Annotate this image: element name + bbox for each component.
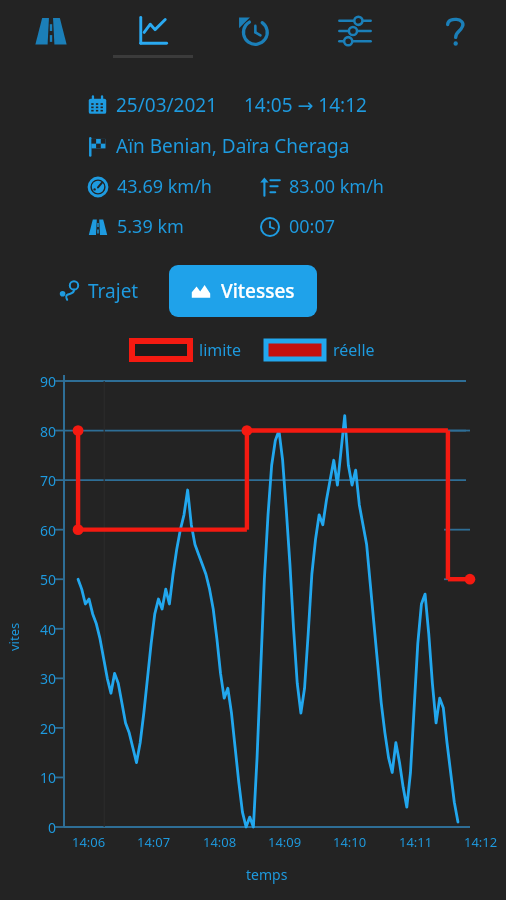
staticText: temps: [246, 865, 288, 884]
staticText: 90: [40, 372, 57, 391]
staticText: 83.00 km/h: [289, 174, 384, 199]
other: Réglages: [338, 14, 372, 48]
staticText: 14:08: [203, 833, 237, 851]
staticText: Trajet: [88, 278, 139, 304]
staticText: 5.39 km: [117, 214, 184, 239]
staticText: 80: [40, 422, 57, 441]
staticText: 14:10: [333, 833, 367, 851]
staticText: limite: [199, 339, 242, 361]
staticText: vitesse (km/h): [5, 623, 23, 651]
staticText: 14:07: [137, 833, 171, 851]
staticText: 20: [40, 719, 57, 738]
other: Vitesses: [191, 281, 211, 301]
button[interactable]: Graphiques: [102, 0, 203, 62]
staticText: 43.69 km/h: [117, 174, 212, 199]
button[interactable]: Réglages: [304, 0, 405, 62]
other: Lieu: [88, 137, 107, 156]
other: Durée: [260, 217, 280, 237]
staticText: 60: [40, 521, 57, 540]
other: Vitesse moyenne: [88, 177, 108, 197]
staticText: 14:06: [72, 833, 106, 851]
other: Distance: [88, 217, 108, 237]
staticText: 14:11: [399, 833, 433, 851]
other: Route: [34, 14, 68, 48]
staticText: réelle: [333, 339, 375, 361]
staticText: 30: [40, 669, 57, 688]
other: Graphiques: [136, 14, 170, 48]
button[interactable]: Trajet: [52, 268, 147, 314]
staticText: 40: [40, 620, 57, 639]
button[interactable]: Historique: [203, 0, 304, 62]
staticText: Aïn Benian, Daïra Cheraga: [116, 133, 350, 159]
staticText: 14:12: [464, 833, 498, 851]
staticText: 00:07: [289, 214, 336, 239]
staticText: Vitesses: [221, 278, 295, 304]
other: Historique: [237, 14, 271, 48]
staticText: 70: [40, 471, 57, 490]
staticText: 50: [40, 570, 57, 589]
button[interactable]: Route: [0, 0, 102, 62]
staticText: 0: [48, 818, 57, 837]
staticText: 25/03/2021: [116, 92, 218, 118]
other: Aide: [440, 15, 472, 47]
staticText: 14:05 → 14:12: [244, 92, 367, 118]
other: Vitesse maximale: [260, 177, 280, 197]
staticText: 14:09: [268, 833, 302, 851]
other: Trajet: [60, 281, 80, 301]
button[interactable]: Aide: [405, 0, 506, 62]
button[interactable]: Vitesses: [169, 265, 317, 317]
other: Date: [88, 96, 107, 115]
staticText: 10: [40, 768, 57, 787]
